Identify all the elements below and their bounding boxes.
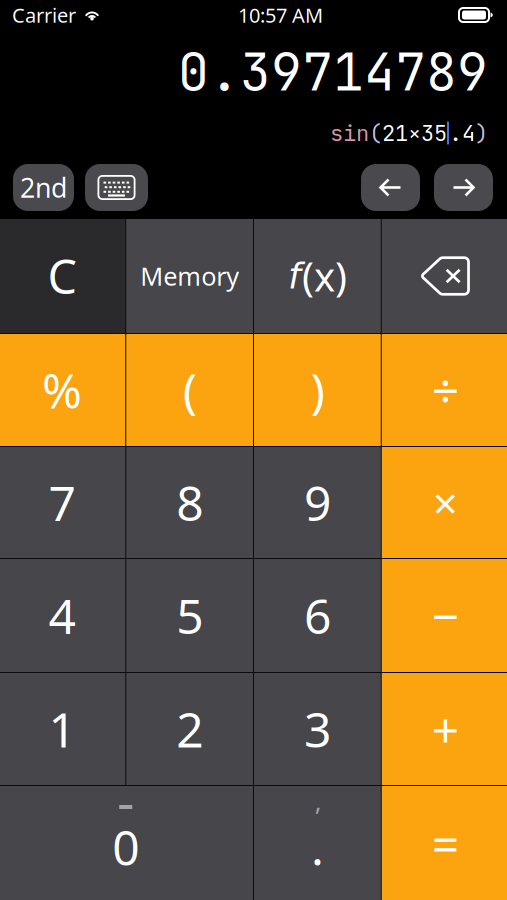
staticText: ( <box>369 118 382 147</box>
staticText: + <box>432 697 459 761</box>
button[interactable]: f <box>254 219 381 333</box>
staticText: 7 <box>48 471 75 534</box>
staticText: 9 <box>304 471 331 534</box>
button[interactable]: 5 <box>126 559 253 672</box>
staticText: − <box>432 584 459 647</box>
button[interactable]: 9 <box>254 447 381 558</box>
staticText: 4 <box>48 584 75 647</box>
staticText: 8 <box>176 471 203 534</box>
button[interactable]: Keyboard <box>85 164 148 211</box>
button[interactable]: = <box>382 786 507 900</box>
button[interactable]: × <box>382 447 507 558</box>
staticText: 5 <box>176 584 203 647</box>
button[interactable]: 4 <box>0 559 125 672</box>
button[interactable]: − <box>382 559 507 672</box>
staticText: 2nd <box>20 170 67 205</box>
staticText: C <box>47 245 76 307</box>
staticText: 2 <box>176 697 203 761</box>
staticText: Carrier <box>12 2 76 28</box>
button[interactable]: Next <box>434 164 493 211</box>
button[interactable]: C <box>0 219 125 333</box>
button[interactable]: + <box>382 673 507 785</box>
staticText: 1 <box>48 697 75 761</box>
staticText: = <box>432 811 459 875</box>
staticText: 21×35 <box>382 118 447 147</box>
staticText: ’ <box>315 799 319 833</box>
staticText: Memory <box>140 259 239 293</box>
button[interactable]: 2nd <box>13 164 74 211</box>
staticText: sin <box>330 118 369 147</box>
button[interactable]: 0 <box>0 786 253 900</box>
staticText: ( <box>183 358 197 422</box>
staticText: ) <box>475 118 488 147</box>
button[interactable]: 2 <box>126 673 253 785</box>
staticText: (x) <box>302 249 347 302</box>
button[interactable]: 6 <box>254 559 381 672</box>
staticText: % <box>42 358 82 422</box>
staticText: . <box>311 815 324 879</box>
button[interactable]: 1 <box>0 673 125 785</box>
staticText: 10:57 AM <box>238 2 323 28</box>
staticText: × <box>433 473 458 532</box>
staticText: ) <box>310 358 324 422</box>
button[interactable]: 8 <box>126 447 253 558</box>
button[interactable]: ( <box>126 334 253 446</box>
staticText: f <box>288 255 301 297</box>
staticText: 3 <box>304 697 331 761</box>
button[interactable]: Previous <box>361 164 420 211</box>
button[interactable]: . <box>254 786 381 900</box>
button[interactable]: Memory <box>126 219 253 333</box>
button[interactable]: 7 <box>0 447 125 558</box>
staticText: .4 <box>449 118 475 147</box>
staticText: 0.39714789 <box>178 38 488 106</box>
button[interactable]: ) <box>254 334 381 446</box>
staticText: ÷ <box>432 358 459 422</box>
button[interactable]: ÷ <box>382 334 507 446</box>
button[interactable]: % <box>0 334 125 446</box>
staticText: 6 <box>304 584 331 647</box>
staticText: 0 <box>112 815 139 879</box>
button[interactable]: 3 <box>254 673 381 785</box>
button[interactable] <box>382 219 507 333</box>
